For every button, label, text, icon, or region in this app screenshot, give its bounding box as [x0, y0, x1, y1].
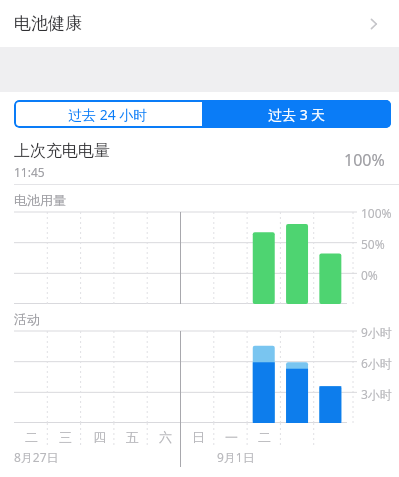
staticText: 二 [25, 429, 38, 445]
staticText: 过去 3 天 [268, 105, 326, 124]
staticText: 上次充电电量 [14, 141, 110, 161]
button[interactable]: 过去 3 天 [202, 100, 391, 128]
staticText: 6小时 [361, 355, 392, 371]
staticText: 8月27日 [14, 449, 59, 465]
staticText: 日 [192, 429, 205, 445]
staticText: 二 [258, 429, 271, 445]
button[interactable]: 电池健康 [0, 0, 399, 47]
staticText: 活动 [14, 311, 40, 327]
staticText: 9月1日 [217, 449, 255, 465]
staticText: 50% [361, 236, 385, 252]
staticText: 电池用量 [14, 192, 66, 208]
staticText: 一 [225, 429, 238, 445]
staticText: 六 [159, 429, 172, 445]
staticText: 11:45 [14, 164, 45, 180]
button[interactable]: 上次充电电量 [0, 136, 399, 184]
staticText: 3小时 [361, 386, 392, 402]
other: 电池健康详情 [365, 14, 385, 34]
staticText: 五 [126, 429, 139, 445]
staticText: 9小时 [361, 324, 392, 340]
staticText: 100% [361, 205, 392, 221]
button[interactable]: 过去 24 小时 [14, 100, 202, 128]
staticText: 四 [93, 429, 106, 445]
staticText: 过去 24 小时 [68, 105, 148, 124]
staticText: 100% [344, 149, 385, 171]
staticText: 电池健康 [14, 13, 82, 34]
staticText: 三 [59, 429, 72, 445]
staticText: 0% [361, 267, 378, 283]
